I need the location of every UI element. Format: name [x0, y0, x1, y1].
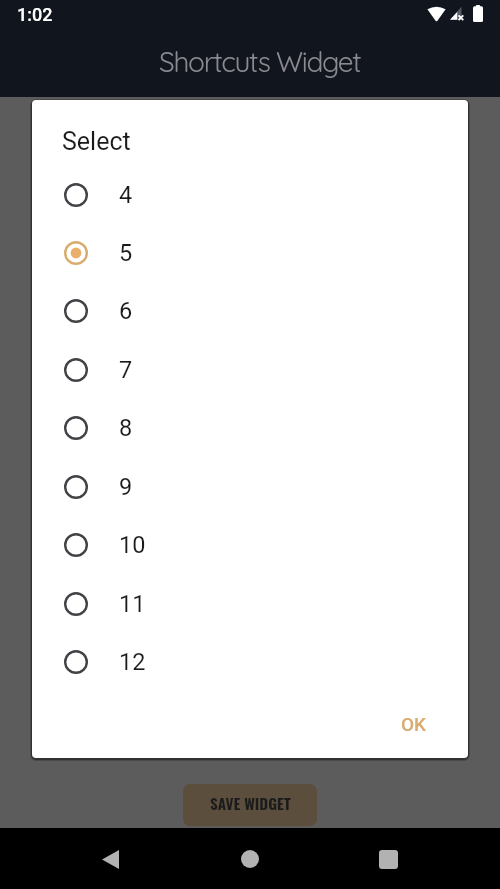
button[interactable]: 10 [32, 516, 468, 574]
button[interactable]: OK [391, 705, 437, 743]
staticText: 4 [119, 181, 133, 209]
staticText: 12 [119, 648, 146, 676]
button[interactable]: 11 [32, 575, 468, 633]
staticText: 1:02 [17, 4, 53, 25]
button[interactable]: Recent apps [363, 834, 413, 884]
button[interactable]: 9 [32, 458, 468, 516]
staticText: Shortcuts Widget [159, 44, 361, 79]
button[interactable]: 4 [32, 166, 468, 224]
staticText: SAVE WIDGET [210, 792, 291, 815]
button[interactable]: 7 [32, 341, 468, 399]
button[interactable]: 6 [32, 282, 468, 340]
button[interactable]: 8 [32, 399, 468, 457]
button[interactable]: SAVE WIDGET [183, 784, 317, 826]
staticText: 11 [119, 590, 146, 618]
staticText: OK [401, 713, 427, 735]
button[interactable]: 12 [32, 633, 468, 691]
staticText: 5 [119, 239, 133, 267]
staticText: 10 [119, 531, 146, 559]
staticText: Select [62, 127, 131, 156]
staticText: 8 [119, 414, 133, 442]
staticText: 6 [119, 297, 133, 325]
staticText: 7 [119, 356, 133, 384]
button[interactable]: Home [225, 834, 275, 884]
button[interactable]: Back [85, 834, 135, 884]
button[interactable]: 5 [32, 224, 468, 282]
staticText: 9 [119, 473, 133, 501]
